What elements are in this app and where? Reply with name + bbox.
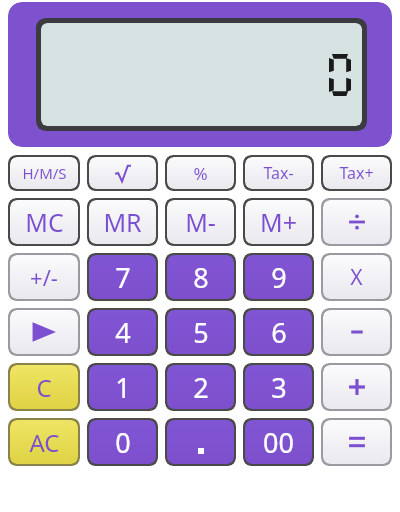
button[interactable]: 2 <box>167 365 234 409</box>
button[interactable]: 4 <box>89 310 156 354</box>
staticText: 5 <box>193 314 209 351</box>
staticText: 3 <box>271 369 287 406</box>
button[interactable]: +/- <box>10 255 78 299</box>
button[interactable]: H/M/S <box>10 157 78 189</box>
button[interactable]: Divide <box>323 200 390 244</box>
button[interactable]: Tax- <box>245 157 312 189</box>
button[interactable]: 00 <box>245 420 312 464</box>
staticText: MC <box>25 205 64 239</box>
staticText: 9 <box>271 259 287 296</box>
button[interactable]: 8 <box>167 255 234 299</box>
button[interactable]: 7 <box>89 255 156 299</box>
button[interactable]: 5 <box>167 310 234 354</box>
staticText: X <box>350 263 363 292</box>
staticText: 7 <box>115 259 131 296</box>
button[interactable]: 0 <box>89 420 156 464</box>
staticText: 00 <box>263 424 294 461</box>
button[interactable]: Square root <box>89 157 156 189</box>
button[interactable]: M+ <box>245 200 312 244</box>
staticText: MR <box>103 205 142 239</box>
staticText: 0 <box>115 424 131 461</box>
button[interactable]: 6 <box>245 310 312 354</box>
button[interactable]: Minus <box>323 310 390 354</box>
staticText: AC <box>29 426 60 459</box>
button[interactable]: Tax+ <box>323 157 390 189</box>
staticText: Tax- <box>263 162 294 184</box>
button[interactable]: Decimal point <box>167 420 234 464</box>
staticText: % <box>193 162 208 185</box>
button[interactable]: C <box>10 365 78 409</box>
staticText: +/- <box>30 262 58 292</box>
button[interactable]: Plus <box>323 365 390 409</box>
staticText: 6 <box>271 314 287 351</box>
button[interactable]: Equals <box>323 420 390 464</box>
staticText: 1 <box>115 369 131 406</box>
staticText: Tax+ <box>339 162 374 184</box>
staticText: C <box>36 371 52 404</box>
button[interactable]: 9 <box>245 255 312 299</box>
staticText: 4 <box>115 314 131 351</box>
staticText: M- <box>185 205 216 239</box>
staticText: 2 <box>193 369 209 406</box>
button[interactable]: Play <box>10 310 78 354</box>
button[interactable]: M- <box>167 200 234 244</box>
button[interactable]: 3 <box>245 365 312 409</box>
button[interactable]: MC <box>10 200 78 244</box>
button[interactable]: MR <box>89 200 156 244</box>
staticText: M+ <box>260 205 297 239</box>
staticText: 8 <box>193 259 209 296</box>
button[interactable]: 1 <box>89 365 156 409</box>
button[interactable]: % <box>167 157 234 189</box>
button[interactable]: AC <box>10 420 78 464</box>
button[interactable]: X <box>323 255 390 299</box>
staticText: H/M/S <box>22 163 67 183</box>
